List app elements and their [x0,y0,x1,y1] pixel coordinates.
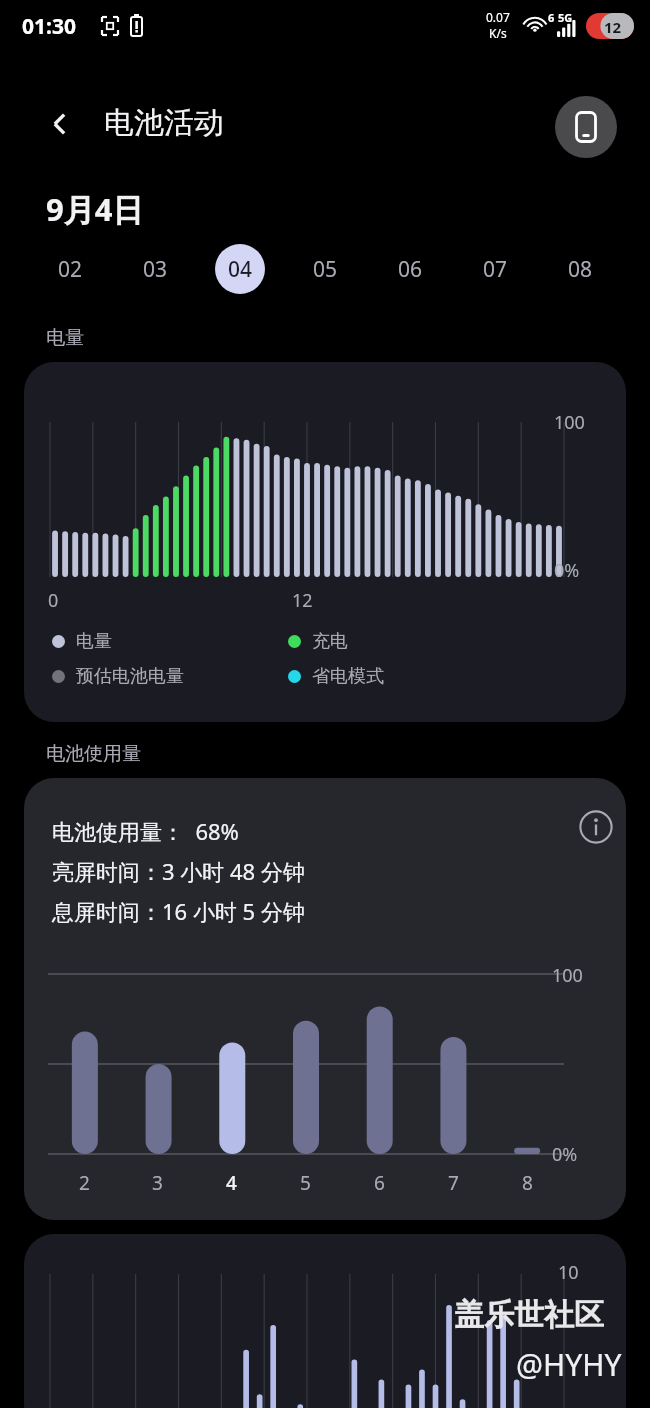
staticText: 9月4日 [46,188,144,230]
staticText: 5 [300,1170,311,1196]
staticText: 12 [292,588,313,613]
staticText: 03 [143,255,168,284]
staticText: 4 [226,1170,237,1196]
staticText: 0 [48,588,59,613]
staticText: K/s [489,25,507,41]
button[interactable]: 03 [112,230,197,308]
staticText: 盖乐世社区 [454,1296,604,1334]
staticText: 电量 [46,326,84,350]
button[interactable]: 02 [28,230,112,308]
button[interactable]: 05 [282,230,367,308]
staticText: 省电模式 [312,665,384,688]
staticText: 0.07 [486,9,510,25]
staticText: 0% [554,558,580,583]
staticText: 2 [79,1170,90,1196]
button[interactable]: 100 [24,362,626,722]
staticText: 100 [552,963,583,988]
staticText: 8 [522,1170,533,1196]
button[interactable]: 信息 [569,800,623,854]
staticText: 0% [552,1142,578,1167]
staticText: 预估电池电量 [76,665,184,688]
staticText: @HYHY [516,1344,622,1385]
button[interactable]: 06 [367,230,452,308]
button[interactable]: 10 [24,1234,626,1408]
staticText: 充电 [312,630,348,653]
staticText: 08 [568,255,593,284]
staticText: 10 [558,1260,579,1285]
staticText: 6 [548,10,555,25]
staticText: 电池使用量： 68% [52,816,239,846]
staticText: 02 [58,255,83,284]
staticText: 息屏时间：16 小时 5 分钟 [52,896,305,926]
staticText: 07 [483,255,508,284]
staticText: 电量 [76,630,112,653]
staticText: 6 [374,1170,385,1196]
button[interactable]: 返回 [34,98,86,150]
button[interactable]: 04 [197,230,282,308]
staticText: 05 [313,255,338,284]
button[interactable]: 08 [537,230,622,308]
staticText: 06 [398,255,423,284]
staticText: 亮屏时间：3 小时 48 分钟 [52,856,305,886]
staticText: 电池活动 [104,104,224,142]
staticText: 7 [448,1170,459,1196]
staticText: 100 [554,410,585,435]
staticText: 01:30 [22,12,76,41]
staticText: 12 [604,17,622,37]
button[interactable]: 电池使用量： 68% [24,778,626,1220]
staticText: 电池使用量 [46,742,141,766]
button[interactable]: 07 [452,230,537,308]
staticText: 5G [558,10,573,25]
staticText: 04 [228,255,253,284]
staticText: 3 [152,1170,163,1196]
button[interactable]: 设备 [555,96,617,158]
